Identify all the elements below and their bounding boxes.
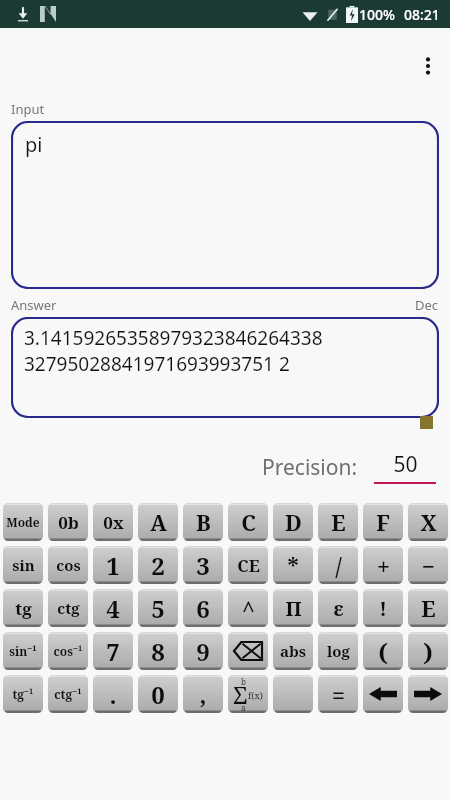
button[interactable]: 3.14159265358979323846264338 32795028841… bbox=[11, 317, 439, 418]
staticText: + bbox=[377, 550, 390, 581]
button[interactable]: − bbox=[408, 546, 448, 584]
button[interactable]: abs bbox=[273, 632, 313, 670]
staticText: F bbox=[376, 507, 390, 537]
button[interactable]: / bbox=[318, 546, 358, 584]
button[interactable]: ) bbox=[408, 632, 448, 670]
staticText: a bbox=[241, 702, 246, 713]
staticText: E bbox=[421, 593, 436, 623]
button[interactable]: A bbox=[138, 503, 178, 541]
button[interactable]: sin bbox=[3, 546, 43, 584]
button[interactable]: ctg⁻¹ bbox=[48, 675, 88, 713]
staticText: . bbox=[109, 678, 117, 711]
button[interactable]: D bbox=[273, 503, 313, 541]
staticText: Mode bbox=[6, 514, 40, 530]
staticText: Answer bbox=[11, 296, 57, 314]
staticText: 2 bbox=[151, 549, 165, 582]
button[interactable]: tg⁻¹ bbox=[3, 675, 43, 713]
staticText: D bbox=[285, 507, 302, 537]
staticText: tg⁻¹ bbox=[12, 686, 34, 702]
staticText: B bbox=[196, 507, 211, 537]
staticText: 0b bbox=[58, 511, 79, 534]
staticText: 7 bbox=[106, 635, 120, 668]
button[interactable]: ^ bbox=[228, 589, 268, 627]
staticText: , bbox=[199, 678, 207, 711]
button[interactable]: Blank bbox=[273, 675, 313, 713]
button[interactable]: Move left bbox=[363, 675, 403, 713]
button[interactable]: 0b bbox=[48, 503, 88, 541]
button[interactable]: pi bbox=[11, 121, 439, 289]
button[interactable]: B bbox=[183, 503, 223, 541]
staticText: sin bbox=[12, 555, 35, 575]
staticText: f(x) bbox=[248, 689, 263, 701]
button[interactable]: 3 bbox=[183, 546, 223, 584]
button[interactable]: = bbox=[318, 675, 358, 713]
button[interactable]: tg bbox=[3, 589, 43, 627]
staticText: CE bbox=[237, 554, 260, 577]
button[interactable]: E bbox=[318, 503, 358, 541]
button[interactable]: 0 bbox=[138, 675, 178, 713]
staticText: 100% bbox=[359, 5, 395, 24]
button[interactable]: ctg bbox=[48, 589, 88, 627]
staticText: log bbox=[327, 641, 350, 661]
button[interactable]: ( bbox=[363, 632, 403, 670]
staticText: ctg bbox=[57, 598, 80, 618]
button[interactable]: 1 bbox=[93, 546, 133, 584]
staticText: C bbox=[241, 507, 256, 537]
staticText: ( bbox=[378, 635, 388, 668]
staticText: ε bbox=[333, 595, 344, 622]
button[interactable]: CE bbox=[228, 546, 268, 584]
button[interactable]: 9 bbox=[183, 632, 223, 670]
button[interactable]: 0x bbox=[93, 503, 133, 541]
button[interactable]: Summation bbox=[228, 675, 268, 713]
staticText: − bbox=[421, 550, 435, 581]
staticText: pi bbox=[25, 131, 43, 158]
staticText: cos⁻¹ bbox=[53, 643, 83, 659]
staticText: ) bbox=[423, 635, 433, 668]
button[interactable]: Backspace bbox=[228, 632, 268, 670]
staticText: X bbox=[420, 507, 437, 537]
staticText: 4 bbox=[106, 592, 120, 625]
staticText: ctg⁻¹ bbox=[54, 686, 82, 702]
button[interactable]: . bbox=[93, 675, 133, 713]
staticText: = bbox=[332, 679, 345, 710]
button[interactable]: 5 bbox=[138, 589, 178, 627]
button[interactable]: ε bbox=[318, 589, 358, 627]
button[interactable]: Π bbox=[273, 589, 313, 627]
button[interactable]: X bbox=[408, 503, 448, 541]
staticText: 6 bbox=[196, 592, 210, 625]
button[interactable]: F bbox=[363, 503, 403, 541]
button[interactable]: , bbox=[183, 675, 223, 713]
button[interactable]: ! bbox=[363, 589, 403, 627]
button[interactable]: E bbox=[408, 589, 448, 627]
button[interactable]: More options bbox=[410, 48, 446, 84]
button[interactable]: 4 bbox=[93, 589, 133, 627]
staticText: Π bbox=[285, 595, 302, 622]
staticText: 0x bbox=[103, 511, 124, 534]
staticText: A bbox=[150, 507, 167, 537]
staticText: 5 bbox=[151, 592, 165, 625]
staticText: ^ bbox=[242, 593, 255, 624]
staticText: Σ bbox=[233, 678, 248, 711]
staticText: cos bbox=[56, 555, 81, 575]
button[interactable]: * bbox=[273, 546, 313, 584]
button[interactable]: Mode bbox=[3, 503, 43, 541]
button[interactable]: sin⁻¹ bbox=[3, 632, 43, 670]
staticText: Input bbox=[11, 100, 45, 118]
button[interactable]: log bbox=[318, 632, 358, 670]
button[interactable]: 8 bbox=[138, 632, 178, 670]
button[interactable]: Move right bbox=[408, 675, 448, 713]
button[interactable]: 7 bbox=[93, 632, 133, 670]
staticText: 9 bbox=[196, 635, 210, 668]
staticText: Precision: bbox=[262, 453, 358, 482]
button[interactable]: cos bbox=[48, 546, 88, 584]
button[interactable]: 2 bbox=[138, 546, 178, 584]
staticText: E bbox=[331, 507, 346, 537]
button[interactable]: C bbox=[228, 503, 268, 541]
button[interactable]: 6 bbox=[183, 589, 223, 627]
button[interactable]: 50 bbox=[374, 450, 436, 484]
button[interactable]: cos⁻¹ bbox=[48, 632, 88, 670]
staticText: abs bbox=[280, 641, 306, 661]
staticText: * bbox=[287, 550, 299, 581]
staticText: 50 bbox=[393, 450, 418, 479]
button[interactable]: + bbox=[363, 546, 403, 584]
